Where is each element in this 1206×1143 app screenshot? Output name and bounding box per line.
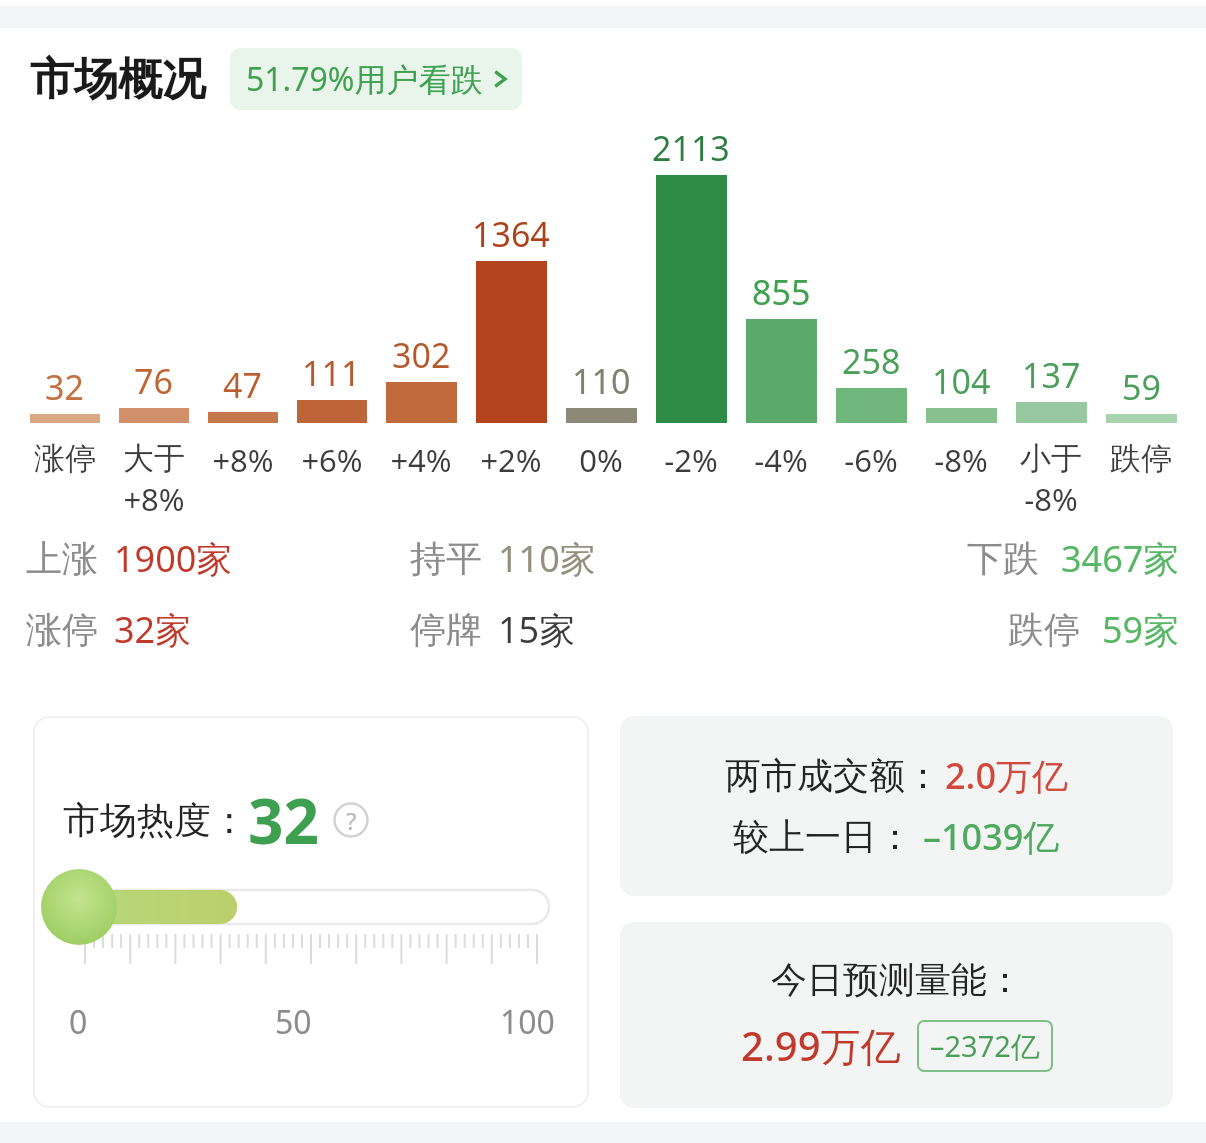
staticText: 110: [572, 358, 631, 404]
staticText: 0%: [579, 439, 623, 481]
staticText: 302: [392, 332, 451, 378]
staticText: +8%: [212, 439, 274, 481]
staticText: 32: [45, 364, 84, 410]
staticText: 137: [1022, 352, 1081, 398]
staticText: -8%: [934, 439, 988, 481]
staticText: –2372亿: [930, 1026, 1040, 1066]
staticText: 855: [752, 269, 811, 315]
staticText: -8%: [1024, 478, 1078, 518]
staticText: 15家: [498, 605, 576, 654]
staticText: 59家: [1102, 605, 1180, 654]
staticText: 下跌: [967, 536, 1039, 581]
staticText: 100: [500, 1000, 555, 1044]
staticText: -2%: [664, 439, 718, 481]
staticText: 停牌: [410, 607, 482, 652]
staticText: +4%: [390, 439, 452, 481]
button[interactable]: 市场热度：: [33, 716, 589, 1108]
staticText: 111: [302, 350, 361, 396]
button[interactable]: 今日预测量能：: [620, 922, 1173, 1108]
staticText: 32: [248, 778, 319, 862]
staticText: 51.79%用户看跌: [246, 57, 483, 101]
staticText: 持平: [410, 536, 482, 581]
staticText: 3467家: [1061, 534, 1180, 583]
staticText: 市场热度：: [63, 797, 248, 844]
staticText: 今日预测量能：: [771, 957, 1023, 1002]
staticText: 32家: [114, 605, 192, 654]
staticText: ?: [346, 804, 357, 837]
staticText: 2113: [652, 125, 730, 171]
staticText: 1900家: [114, 534, 233, 583]
staticText: 50: [275, 1000, 312, 1044]
staticText: +8%: [123, 478, 185, 518]
staticText: 2.0万亿: [945, 751, 1068, 800]
staticText: 小于: [1020, 439, 1082, 478]
staticText: 跌停: [1008, 607, 1080, 652]
staticText: 258: [842, 338, 901, 384]
staticText: 涨停: [34, 439, 96, 478]
staticText: –1039亿: [923, 812, 1060, 861]
staticText: 76: [134, 358, 173, 404]
staticText: -4%: [754, 439, 808, 481]
staticText: -6%: [844, 439, 898, 481]
staticText: 2.99万亿: [741, 1018, 901, 1073]
staticText: 市场概况: [30, 52, 206, 107]
button[interactable]: 51.79%用户看跌: [230, 48, 522, 110]
staticText: 较上一日：: [733, 814, 913, 859]
staticText: 59: [1122, 364, 1161, 410]
staticText: 跌停: [1110, 439, 1172, 478]
staticText: 两市成交额：: [725, 753, 941, 798]
staticText: +6%: [301, 439, 363, 481]
staticText: 0: [69, 1000, 88, 1044]
staticText: 110家: [498, 534, 596, 583]
staticText: 47: [223, 362, 262, 408]
staticText: 涨停: [26, 607, 98, 652]
button[interactable]: 帮助说明: [333, 802, 369, 838]
staticText: +2%: [480, 439, 542, 481]
staticText: 大于: [123, 439, 185, 478]
staticText: 上涨: [26, 536, 98, 581]
staticText: 104: [932, 358, 991, 404]
button[interactable]: 两市成交额：: [620, 716, 1173, 896]
staticText: 1364: [472, 211, 550, 257]
